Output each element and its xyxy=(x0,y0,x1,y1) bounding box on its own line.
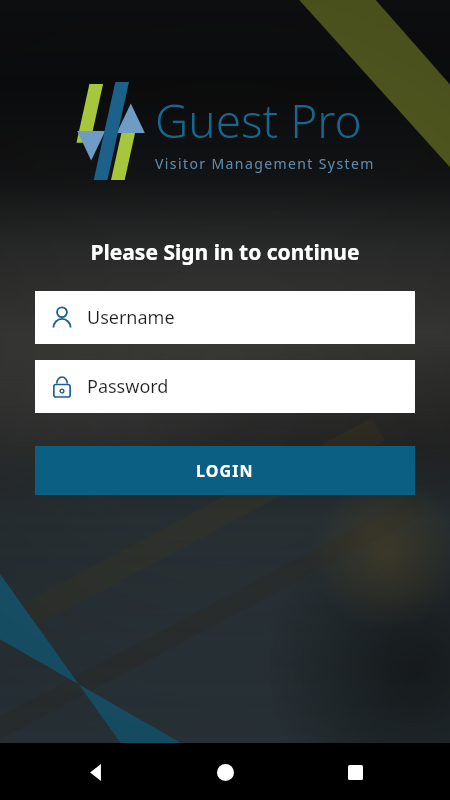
staticText: Username xyxy=(87,305,175,330)
staticText: Visitor Management System xyxy=(155,154,375,173)
button[interactable]: Back xyxy=(71,748,119,796)
staticText: Password xyxy=(87,374,169,399)
button[interactable]: Recent apps xyxy=(331,748,379,796)
button[interactable]: LOGIN xyxy=(35,446,415,495)
staticText: Please Sign in to continue xyxy=(90,238,360,267)
staticText: Guest Pro xyxy=(155,89,362,152)
button[interactable]: Password xyxy=(35,360,415,413)
button[interactable]: Home xyxy=(201,748,249,796)
staticText: LOGIN xyxy=(196,460,254,482)
button[interactable]: Username xyxy=(35,291,415,344)
